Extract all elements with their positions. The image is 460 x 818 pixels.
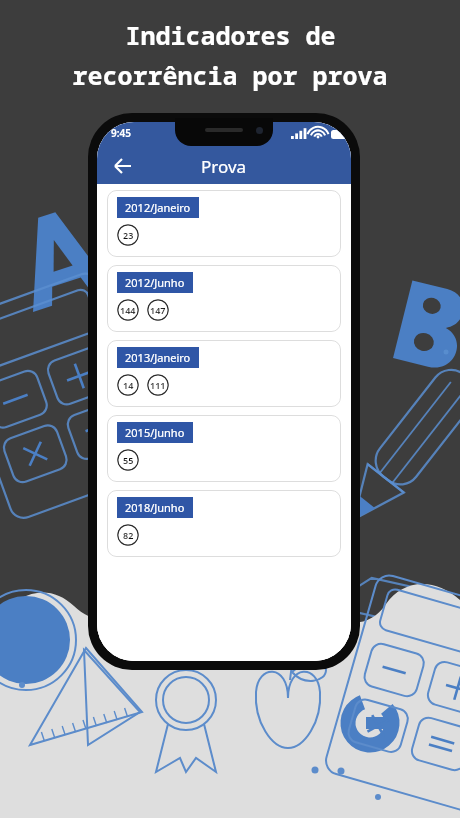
staticText: 2012/Junho [125,275,185,290]
button[interactable]: 82 [117,524,139,546]
staticText: 2012/Janeiro [125,200,191,215]
staticText: 2018/Junho [125,500,185,515]
button[interactable]: 2013/Janeiro [107,340,341,407]
staticText: 23 [123,229,134,241]
staticText: 144 [120,304,136,316]
staticText: recorrência por prova [72,58,388,92]
staticText: 55 [123,454,134,466]
staticText: 14 [123,379,134,391]
button[interactable]: 55 [117,449,139,471]
staticText: 9:45 [111,126,131,140]
staticText: 2015/Junho [125,425,185,440]
staticText: 82 [123,529,134,541]
staticText: Prova [201,155,247,178]
button[interactable]: 2015/Junho [107,415,341,482]
staticText: 147 [150,304,166,316]
staticText: 2013/Janeiro [125,350,191,365]
button[interactable]: 2012/Janeiro [107,190,341,257]
button[interactable]: 111 [147,374,169,396]
button[interactable]: 144 [117,299,139,321]
button[interactable]: 147 [147,299,169,321]
button[interactable]: 2018/Junho [107,490,341,557]
staticText: 111 [150,379,166,391]
button[interactable]: 2012/Junho [107,265,341,332]
staticText: Indicadores de [125,18,336,52]
button[interactable]: Voltar [105,149,139,183]
button[interactable]: 23 [117,224,139,246]
button[interactable]: 14 [117,374,139,396]
